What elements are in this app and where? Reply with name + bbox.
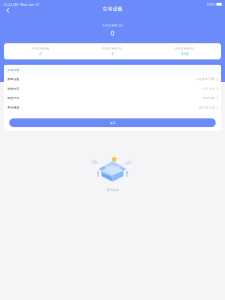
staticText: Mon Jan 17: [20, 1, 39, 7]
staticText: 暂无数据: [106, 188, 118, 192]
staticText: 费率设置: [7, 77, 19, 81]
staticText: 交易设置: [7, 68, 19, 72]
staticText: 保存: [109, 120, 115, 125]
staticText: 本月交易额(元): [175, 46, 195, 50]
staticText: 今日交易笔数: [31, 46, 49, 50]
staticText: 0.00: [181, 51, 188, 56]
button[interactable]: Back: [2, 5, 14, 16]
staticText: 到账方式: [7, 96, 19, 100]
button[interactable]: 费率设置: [4, 74, 221, 84]
button[interactable]: 保存: [9, 118, 216, 127]
button[interactable]: 条码通道: [4, 103, 221, 112]
staticText: 0: [110, 28, 114, 38]
button[interactable]: 到账方式: [4, 93, 221, 103]
staticText: 昨日交易额(元): [102, 46, 122, 50]
staticText: 自动结算: [203, 96, 215, 100]
staticText: 0: [111, 51, 113, 56]
staticText: 交易设置: [102, 5, 122, 12]
staticText: 微信/支付宝: [199, 105, 215, 109]
staticText: 条码通道: [7, 105, 19, 109]
staticText: 11:21 AM: [3, 1, 18, 7]
staticText: 到账状态: [7, 86, 19, 90]
staticText: 0: [39, 51, 41, 56]
staticText: 100%: [206, 2, 215, 7]
staticText: 今日交易额 (元): [102, 23, 123, 27]
button[interactable]: 到账状态: [4, 84, 221, 93]
staticText: 实时到账: [203, 86, 215, 90]
staticText: 标准费率 0.38%: [196, 77, 215, 81]
